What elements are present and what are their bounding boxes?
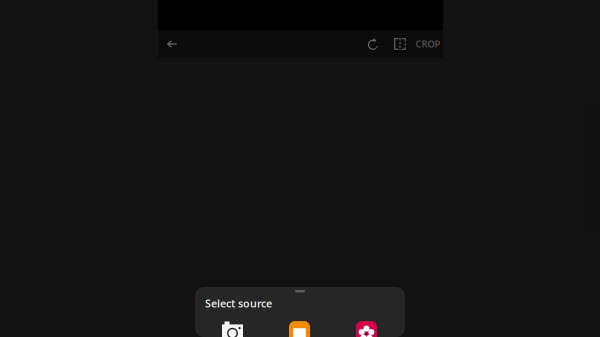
button[interactable]: Flip xyxy=(387,30,413,58)
button[interactable]: Back xyxy=(158,30,186,58)
button[interactable]: Camera xyxy=(199,321,266,337)
button[interactable]: Gallery xyxy=(333,321,400,337)
staticText: Select source xyxy=(205,296,272,311)
button[interactable]: Rotate xyxy=(361,30,387,58)
button[interactable]: CROP xyxy=(413,30,443,58)
staticText: CROP xyxy=(415,38,440,50)
button[interactable]: Files xyxy=(266,321,333,337)
